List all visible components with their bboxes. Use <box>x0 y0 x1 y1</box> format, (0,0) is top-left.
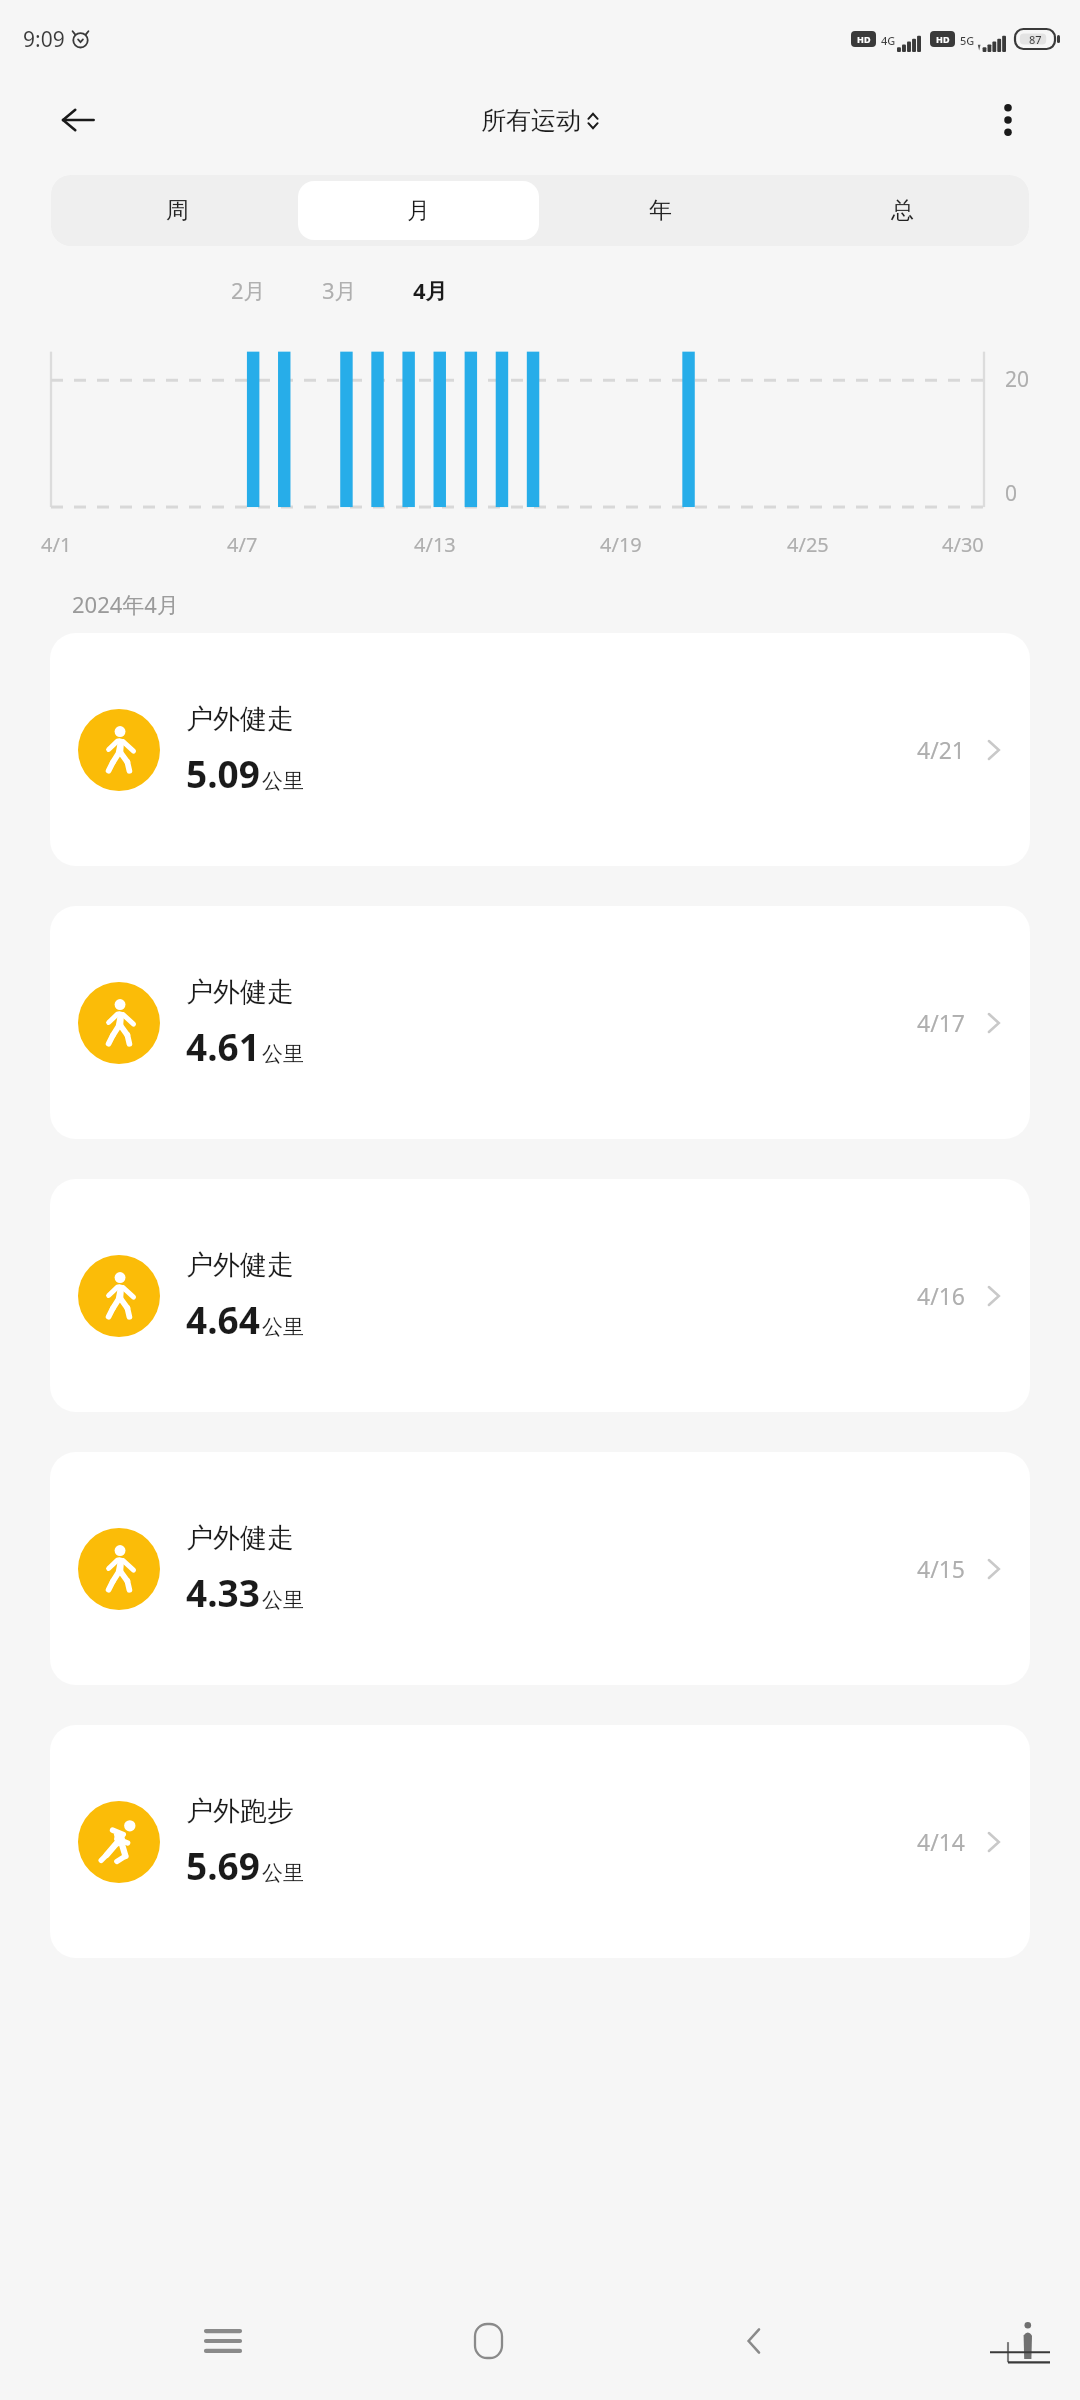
staticText: 户外健走 <box>186 1248 294 1282</box>
staticText: 4.33 <box>186 1567 260 1617</box>
staticText: 公里 <box>262 1587 304 1613</box>
staticText: HD <box>936 33 950 45</box>
staticText: 公里 <box>262 1041 304 1067</box>
staticText: 5.09 <box>186 748 260 798</box>
button[interactable]: More options <box>982 94 1034 146</box>
button[interactable]: 户外健走 <box>50 1179 1030 1412</box>
staticText: 9:09 <box>23 25 65 54</box>
staticText: 4/7 <box>227 531 258 558</box>
staticText: 4/19 <box>600 531 642 558</box>
staticText: 总 <box>891 196 914 225</box>
button[interactable]: 4月 <box>407 271 454 309</box>
staticText: 4/17 <box>917 1007 966 1038</box>
button[interactable]: 3月 <box>316 271 363 309</box>
staticText: 4/1 <box>41 531 72 558</box>
button[interactable]: 户外跑步 <box>50 1725 1030 1958</box>
staticText: 4/25 <box>787 531 829 558</box>
button[interactable]: Home <box>446 2299 530 2383</box>
staticText: 87 <box>1029 32 1042 47</box>
button[interactable]: 总 <box>781 181 1023 240</box>
staticText: HD <box>857 33 871 45</box>
staticText: 年 <box>649 196 672 225</box>
button[interactable]: 2月 <box>225 271 272 309</box>
staticText: 2月 <box>231 275 266 305</box>
staticText: 4/13 <box>414 531 456 558</box>
staticText: 月 <box>407 196 430 225</box>
staticText: 公里 <box>262 1314 304 1340</box>
staticText: 4G <box>881 33 896 48</box>
staticText: 4.61 <box>186 1021 260 1071</box>
staticText: 4/14 <box>917 1826 966 1857</box>
staticText: 2024年4月 <box>72 589 179 619</box>
staticText: 户外健走 <box>186 1521 294 1555</box>
staticText: 周 <box>166 196 189 225</box>
staticText: 户外健走 <box>186 702 294 736</box>
staticText: 户外跑步 <box>186 1794 294 1828</box>
button[interactable]: 月 <box>298 181 539 240</box>
staticText: 所有运动 <box>481 105 581 136</box>
staticText: 3月 <box>322 275 357 305</box>
button[interactable]: Recent apps <box>181 2299 265 2383</box>
staticText: 4/15 <box>917 1553 966 1584</box>
staticText: 公里 <box>262 1860 304 1886</box>
button[interactable]: 周 <box>57 181 298 240</box>
button[interactable]: 户外健走 <box>50 633 1030 866</box>
staticText: 4/30 <box>942 531 984 558</box>
button[interactable]: 户外健走 <box>50 1452 1030 1685</box>
staticText: 20 <box>1005 365 1030 394</box>
staticText: 4.64 <box>186 1294 260 1344</box>
staticText: 5G <box>960 33 975 48</box>
staticText: 公里 <box>262 768 304 794</box>
button[interactable]: 所有运动 <box>481 105 600 136</box>
button[interactable]: 户外健走 <box>50 906 1030 1139</box>
staticText: 5.69 <box>186 1840 260 1890</box>
button[interactable]: 年 <box>539 181 781 240</box>
button[interactable]: Back <box>712 2299 796 2383</box>
staticText: 户外健走 <box>186 975 294 1009</box>
button[interactable]: Back <box>52 94 104 146</box>
staticText: 4/21 <box>917 734 966 765</box>
staticText: 4/16 <box>917 1280 966 1311</box>
staticText: 0 <box>1005 479 1018 508</box>
staticText: 4月 <box>413 275 448 305</box>
